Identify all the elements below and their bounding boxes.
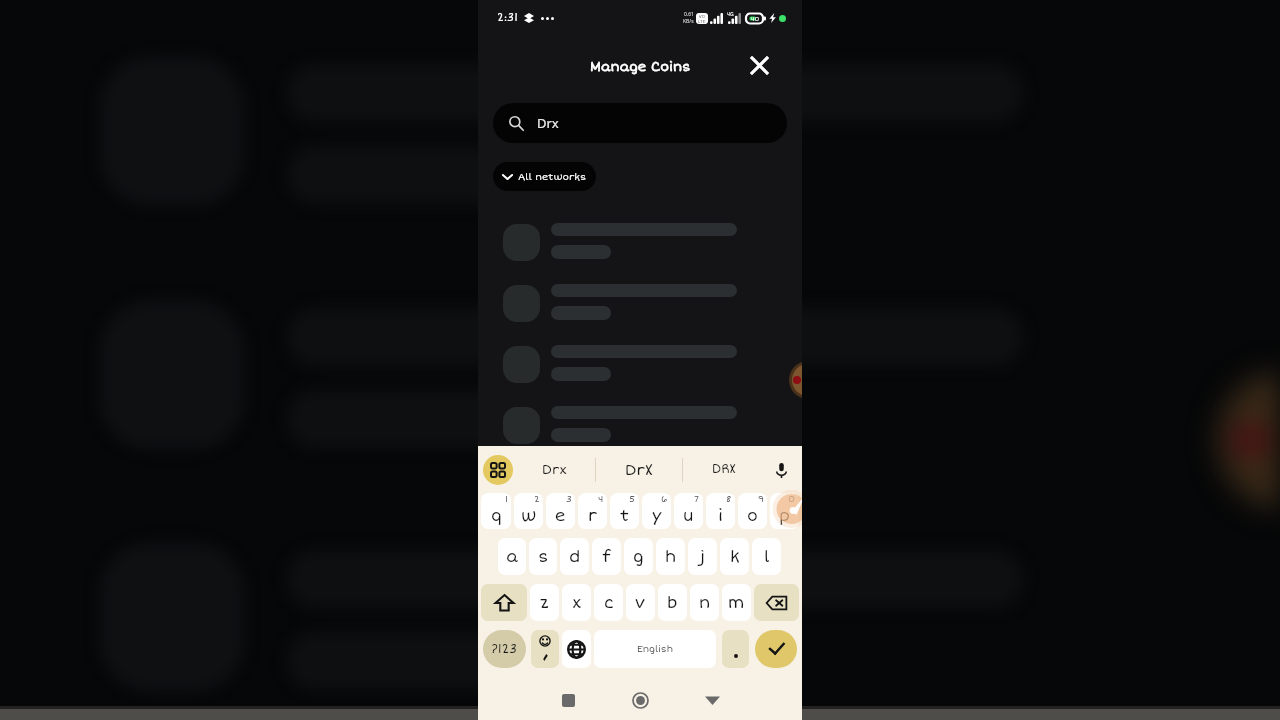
- button[interactable]: English: [594, 630, 716, 668]
- button[interactable]: 0: [770, 493, 799, 529]
- button[interactable]: 9: [738, 493, 767, 529]
- staticText: z: [540, 593, 549, 613]
- staticText: t: [620, 506, 630, 526]
- button[interactable]: 6: [642, 493, 671, 529]
- staticText: 9: [758, 494, 764, 505]
- button[interactable]: All networks: [493, 162, 596, 191]
- button[interactable]: z: [530, 584, 559, 621]
- staticText: KB/s: [683, 18, 694, 25]
- staticText: 6: [661, 494, 668, 505]
- button[interactable]: Back: [692, 681, 732, 720]
- staticText: o: [747, 506, 758, 526]
- button[interactable]: Voice input: [765, 454, 797, 486]
- staticText: All networks: [518, 171, 587, 183]
- button[interactable]: a: [498, 538, 526, 575]
- staticText: 40: [751, 15, 760, 22]
- staticText: v: [635, 593, 646, 613]
- staticText: 7: [694, 494, 700, 505]
- staticText: k: [730, 547, 740, 567]
- staticText: Manage Coins: [590, 59, 691, 75]
- button[interactable]: Shift: [481, 584, 527, 621]
- button[interactable]: m: [722, 584, 751, 621]
- button[interactable]: Change language: [562, 630, 591, 668]
- staticText: 0.61: [684, 11, 694, 18]
- button[interactable]: 8: [706, 493, 735, 529]
- button[interactable]: 2: [514, 493, 543, 529]
- staticText: l: [764, 547, 770, 567]
- button[interactable]: j: [688, 538, 717, 575]
- staticText: j: [700, 547, 705, 567]
- staticText: p: [779, 506, 791, 526]
- staticText: Drx: [542, 462, 567, 478]
- staticText: f: [602, 547, 611, 567]
- staticText: y: [652, 506, 662, 526]
- staticText: c: [604, 593, 614, 613]
- button[interactable]: g: [624, 538, 653, 575]
- staticText: 8: [726, 494, 732, 505]
- staticText: a: [506, 547, 518, 567]
- staticText: b: [667, 593, 678, 613]
- button[interactable]: b: [658, 584, 687, 621]
- staticText: 2: [534, 494, 540, 505]
- button[interactable]: 4: [578, 493, 607, 529]
- staticText: DrX: [625, 461, 653, 479]
- staticText: 1: [505, 494, 508, 505]
- staticText: ?123: [491, 642, 518, 657]
- button[interactable]: 5: [610, 493, 639, 529]
- button[interactable]: f: [592, 538, 621, 575]
- button[interactable]: Home: [620, 681, 660, 720]
- button[interactable]: DRX: [683, 447, 765, 492]
- button[interactable]: d: [560, 538, 589, 575]
- button[interactable]: Backspace: [754, 584, 799, 621]
- button[interactable]: Enter: [755, 630, 797, 668]
- staticText: r: [588, 506, 598, 526]
- staticText: 5: [629, 494, 636, 505]
- button[interactable]: Toolbar: [483, 455, 513, 485]
- staticText: Drx: [537, 114, 559, 132]
- staticText: LTE: [698, 19, 706, 24]
- staticText: m: [728, 593, 745, 613]
- staticText: 0: [788, 494, 796, 505]
- button[interactable]: Drx: [493, 103, 787, 143]
- button[interactable]: c: [594, 584, 623, 621]
- staticText: h: [665, 547, 677, 567]
- staticText: 2:31: [497, 11, 518, 25]
- staticText: q: [491, 506, 502, 526]
- staticText: 3: [566, 494, 572, 505]
- button[interactable]: DrX: [596, 447, 682, 492]
- staticText: English: [637, 644, 673, 655]
- button[interactable]: Emoji: [531, 630, 559, 668]
- staticText: 4G: [727, 11, 734, 17]
- staticText: s: [538, 547, 549, 567]
- staticText: g: [633, 547, 644, 567]
- button[interactable]: 1: [481, 493, 511, 529]
- button[interactable]: k: [720, 538, 749, 575]
- button[interactable]: 3: [546, 493, 575, 529]
- staticText: i: [718, 506, 723, 526]
- staticText: u: [683, 506, 694, 526]
- button[interactable]: Close: [742, 48, 776, 82]
- staticText: d: [569, 547, 581, 567]
- staticText: n: [699, 593, 711, 613]
- button[interactable]: Drx: [513, 447, 595, 492]
- staticText: w: [521, 506, 537, 526]
- button[interactable]: Period: [722, 630, 749, 668]
- button[interactable]: s: [529, 538, 557, 575]
- button[interactable]: h: [656, 538, 685, 575]
- button[interactable]: x: [562, 584, 591, 621]
- button[interactable]: n: [690, 584, 719, 621]
- button[interactable]: v: [626, 584, 655, 621]
- button[interactable]: l: [752, 538, 781, 575]
- staticText: e: [555, 506, 566, 526]
- button[interactable]: 7: [674, 493, 703, 529]
- staticText: DRX: [712, 462, 736, 477]
- staticText: VO: [699, 14, 705, 19]
- staticText: x: [572, 593, 582, 613]
- button[interactable]: ?123: [483, 630, 526, 668]
- button[interactable]: Recents: [548, 681, 588, 720]
- staticText: 4: [598, 494, 604, 505]
